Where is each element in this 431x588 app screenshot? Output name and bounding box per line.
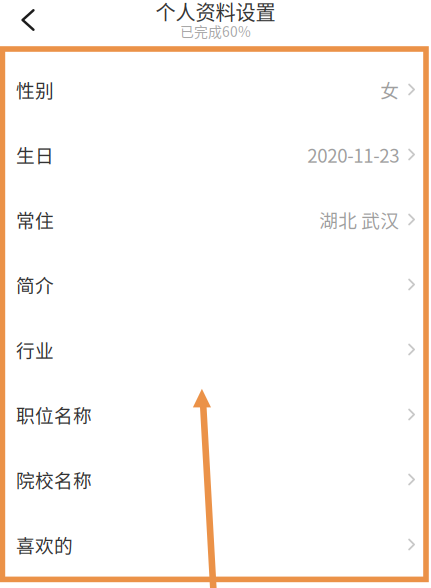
button[interactable]: 生日 (0, 122, 431, 187)
button[interactable]: 喜欢的 (0, 512, 431, 577)
staticText: 院校名称 (16, 466, 92, 493)
staticText: 2020-11-23 (307, 141, 399, 168)
staticText: 已完成60% (180, 21, 251, 41)
staticText: 喜欢的 (16, 531, 73, 558)
button[interactable]: 行业 (0, 317, 431, 382)
button[interactable]: 简介 (0, 252, 431, 317)
staticText: 性别 (16, 76, 54, 103)
staticText: 生日 (16, 141, 54, 168)
staticText: 职位名称 (16, 401, 92, 428)
staticText: 女 (380, 76, 399, 103)
staticText: 行业 (16, 336, 54, 363)
button[interactable]: Back (0, 0, 56, 40)
staticText: 常住 (16, 206, 54, 233)
button[interactable]: 常住 (0, 187, 431, 252)
staticText: 个人资料设置 (155, 0, 275, 26)
staticText: 湖北 武汉 (319, 206, 399, 233)
staticText: 简介 (16, 271, 54, 298)
button[interactable]: 职位名称 (0, 382, 431, 447)
button[interactable]: 院校名称 (0, 447, 431, 512)
button[interactable]: 性别 (0, 57, 431, 122)
